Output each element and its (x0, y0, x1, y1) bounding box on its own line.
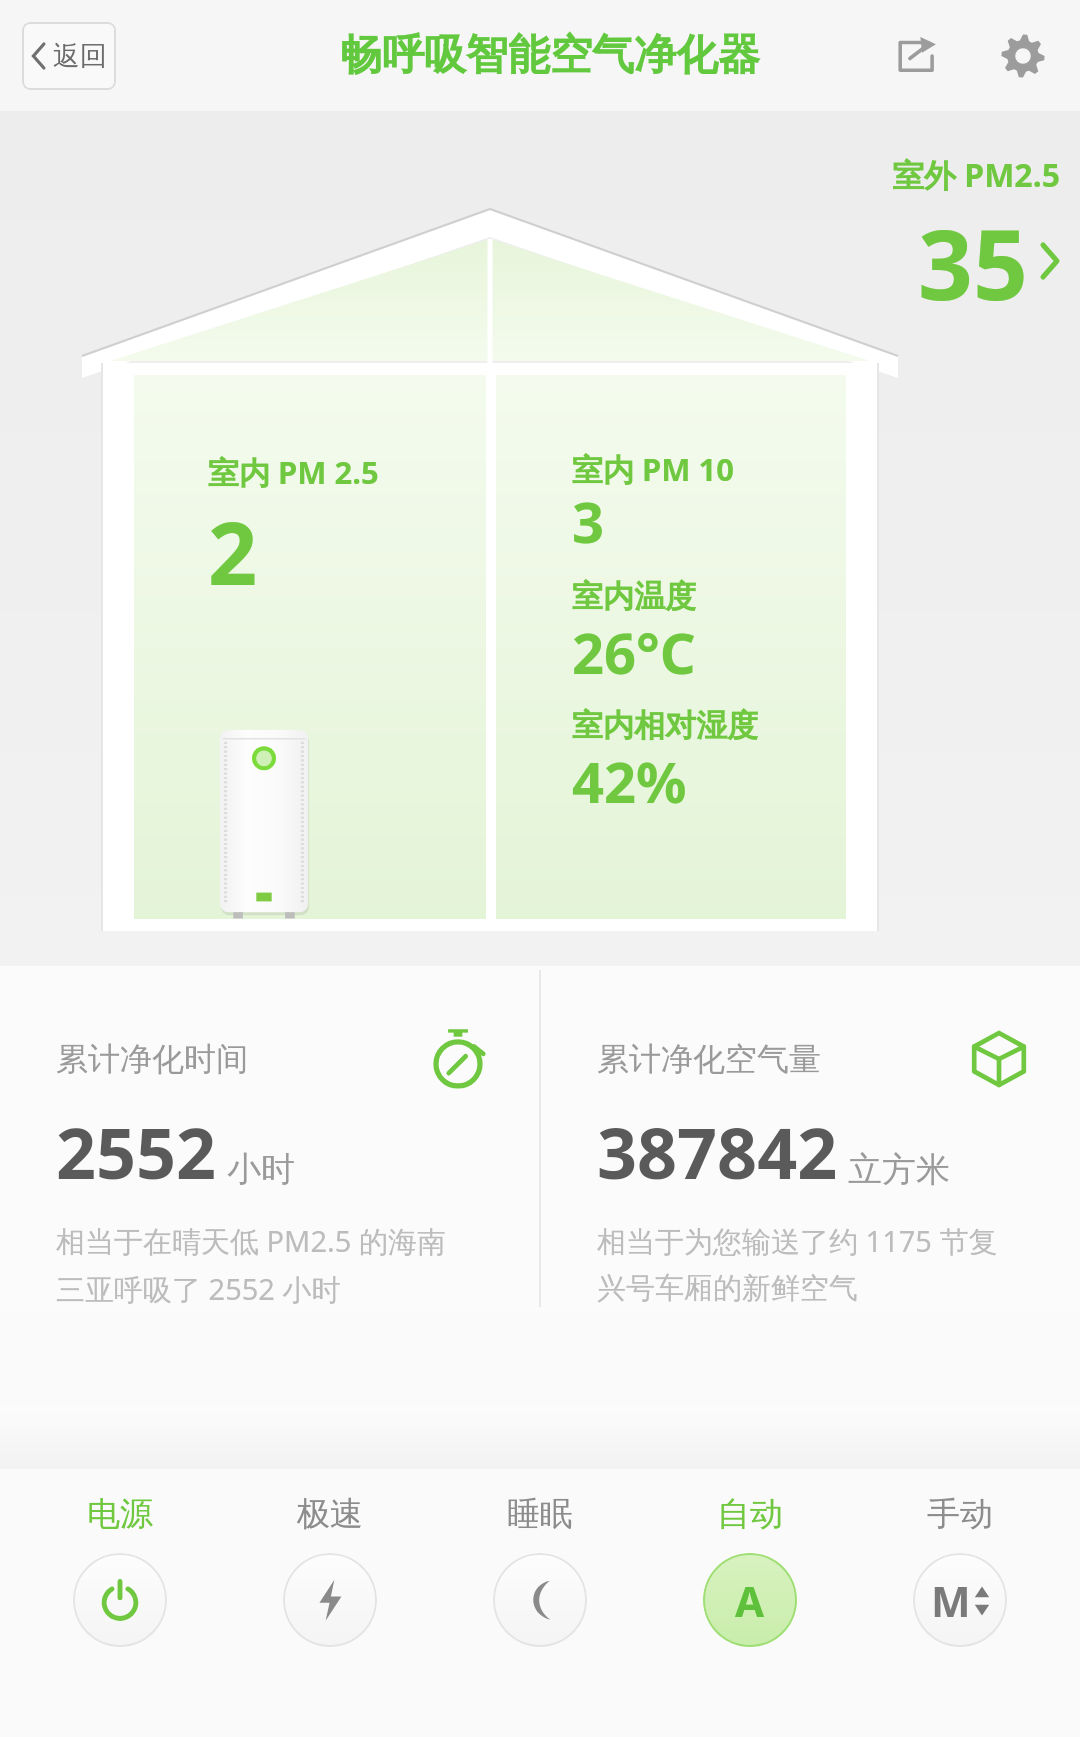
button[interactable]: 累计净化空气量 (541, 966, 1080, 1311)
staticText: 室内相对湿度 (572, 706, 758, 745)
staticText: 极速 (297, 1493, 363, 1535)
staticText: 室内 PM 2.5 (208, 451, 379, 493)
button[interactable]: 睡眠 (450, 1487, 630, 1653)
staticText: 畅呼吸智能空气净化器 (340, 29, 760, 82)
staticText: 42% (572, 743, 687, 819)
staticText: 睡眠 (507, 1493, 573, 1535)
staticText: 自动 (717, 1493, 783, 1535)
staticText: A (735, 1572, 765, 1629)
button[interactable]: 自动 (660, 1487, 840, 1653)
staticText: 电源 (87, 1493, 153, 1535)
button[interactable]: Share (886, 25, 948, 87)
staticText: 3 (572, 483, 605, 559)
button[interactable]: 手动 (870, 1487, 1050, 1653)
button[interactable]: 电源 (30, 1487, 210, 1653)
staticText: 手动 (927, 1493, 993, 1535)
staticText: 室外 PM2.5 (892, 153, 1060, 197)
button[interactable]: 返回 (22, 22, 116, 90)
staticText: 室内温度 (572, 577, 696, 616)
staticText: 26°C (572, 614, 696, 690)
button[interactable]: 累计净化时间 (0, 966, 539, 1311)
staticText: 累计净化时间 (56, 1039, 248, 1079)
staticText: 相当于在晴天低 PM2.5 的海南 三亚呼吸了 2552 小时 (56, 1221, 446, 1309)
staticText: 35 (918, 197, 1028, 328)
staticText: 返回 (53, 39, 107, 73)
staticText: 2552 (56, 1104, 217, 1199)
staticText: 387842 (597, 1104, 838, 1199)
staticText: 累计净化空气量 (597, 1039, 821, 1079)
button[interactable]: 极速 (240, 1487, 420, 1653)
staticText: 小时 (227, 1148, 295, 1191)
staticText: 室内 PM 10 (572, 448, 735, 490)
staticText: M (931, 1572, 971, 1629)
staticText: 立方米 (848, 1148, 950, 1191)
button[interactable]: 室外 PM2.5 (892, 153, 1060, 328)
button[interactable]: Settings (992, 25, 1054, 87)
staticText: 2 (208, 493, 258, 610)
staticText: 相当于为您输送了约 1175 节复 兴号车厢的新鲜空气 (597, 1221, 998, 1307)
